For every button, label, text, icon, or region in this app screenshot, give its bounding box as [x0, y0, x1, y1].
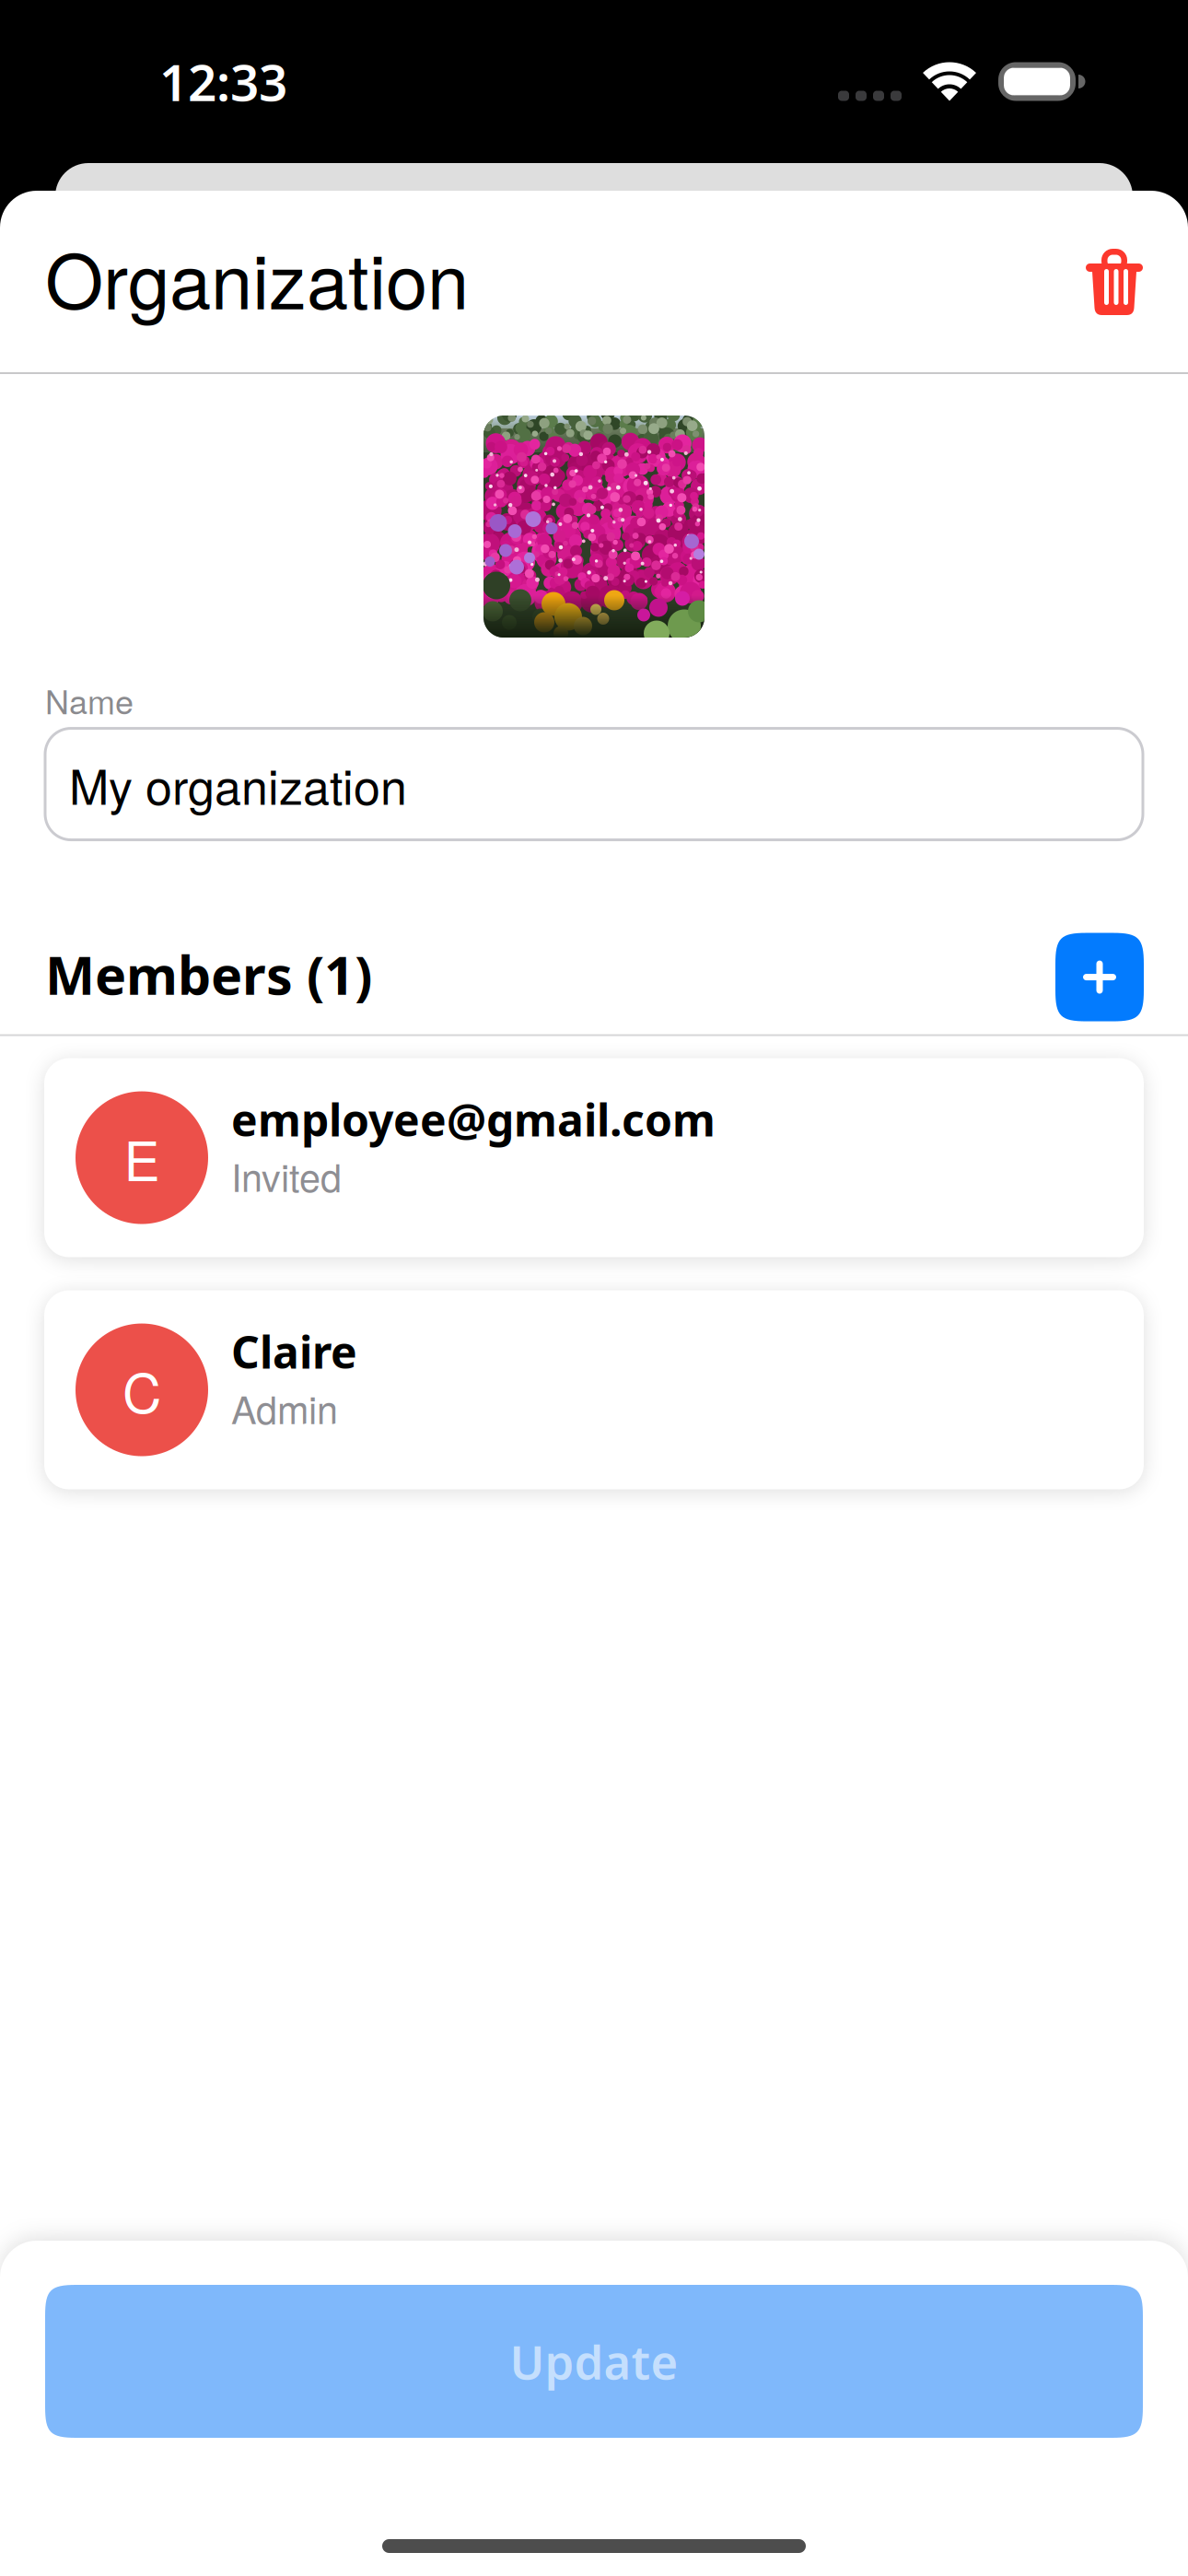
staticText: Update [510, 2330, 678, 2393]
button[interactable]: Delete organization [1065, 233, 1164, 330]
button[interactable]: C [44, 1290, 1144, 1489]
staticText: Admin [231, 1381, 338, 1435]
staticText: Invited [231, 1148, 342, 1203]
staticText: E [124, 1119, 160, 1196]
staticText: 12:33 [159, 47, 287, 116]
staticText: Claire [231, 1321, 357, 1382]
staticText: My organization [69, 750, 407, 818]
staticText: Members (1) [45, 938, 372, 1010]
staticText: Name [45, 676, 134, 724]
button[interactable]: E [44, 1058, 1144, 1257]
staticText: Organization [45, 223, 469, 331]
button[interactable]: Organization photo [483, 416, 705, 638]
staticText: employee@gmail.com [231, 1089, 716, 1149]
staticText: C [122, 1351, 161, 1429]
button[interactable]: Update [45, 2285, 1143, 2438]
button[interactable]: Add member [1055, 930, 1144, 1019]
